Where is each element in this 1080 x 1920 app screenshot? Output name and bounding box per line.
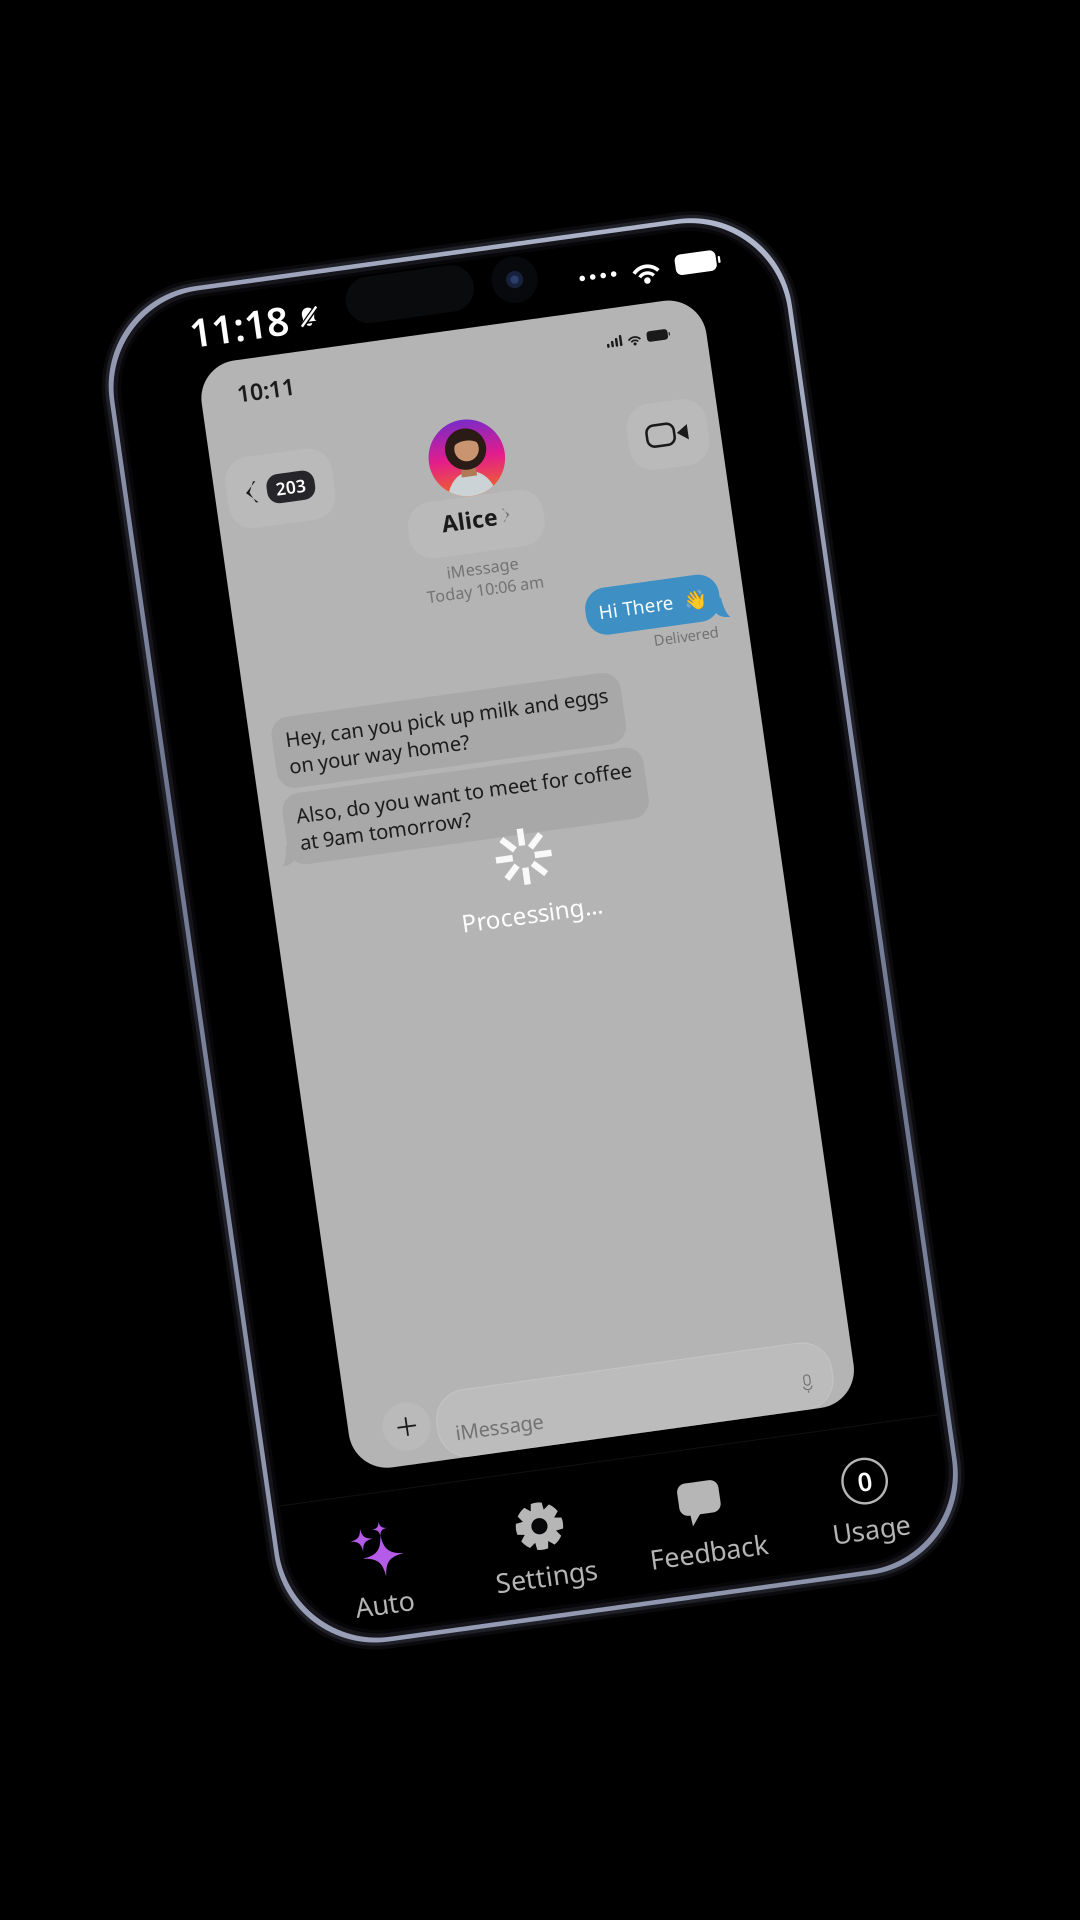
staticText: at 9am tomorrow? <box>125 545 297 572</box>
staticText: Settings <box>213 1293 315 1328</box>
button[interactable]: Settings <box>183 1237 346 1328</box>
staticText: iMessage <box>195 1144 283 1171</box>
staticText: Hey, can you pick up milk and eggs <box>125 443 449 469</box>
staticText: iMessage <box>307 304 379 325</box>
staticText: Also, do you want to meet for coffee <box>125 519 461 545</box>
staticText: Alice <box>309 251 365 281</box>
button[interactable]: FaceTime <box>504 177 584 242</box>
button[interactable]: Alice <box>275 243 411 299</box>
staticText: Today 10:06 am <box>284 325 401 346</box>
staticText: on your way home? <box>125 469 306 496</box>
